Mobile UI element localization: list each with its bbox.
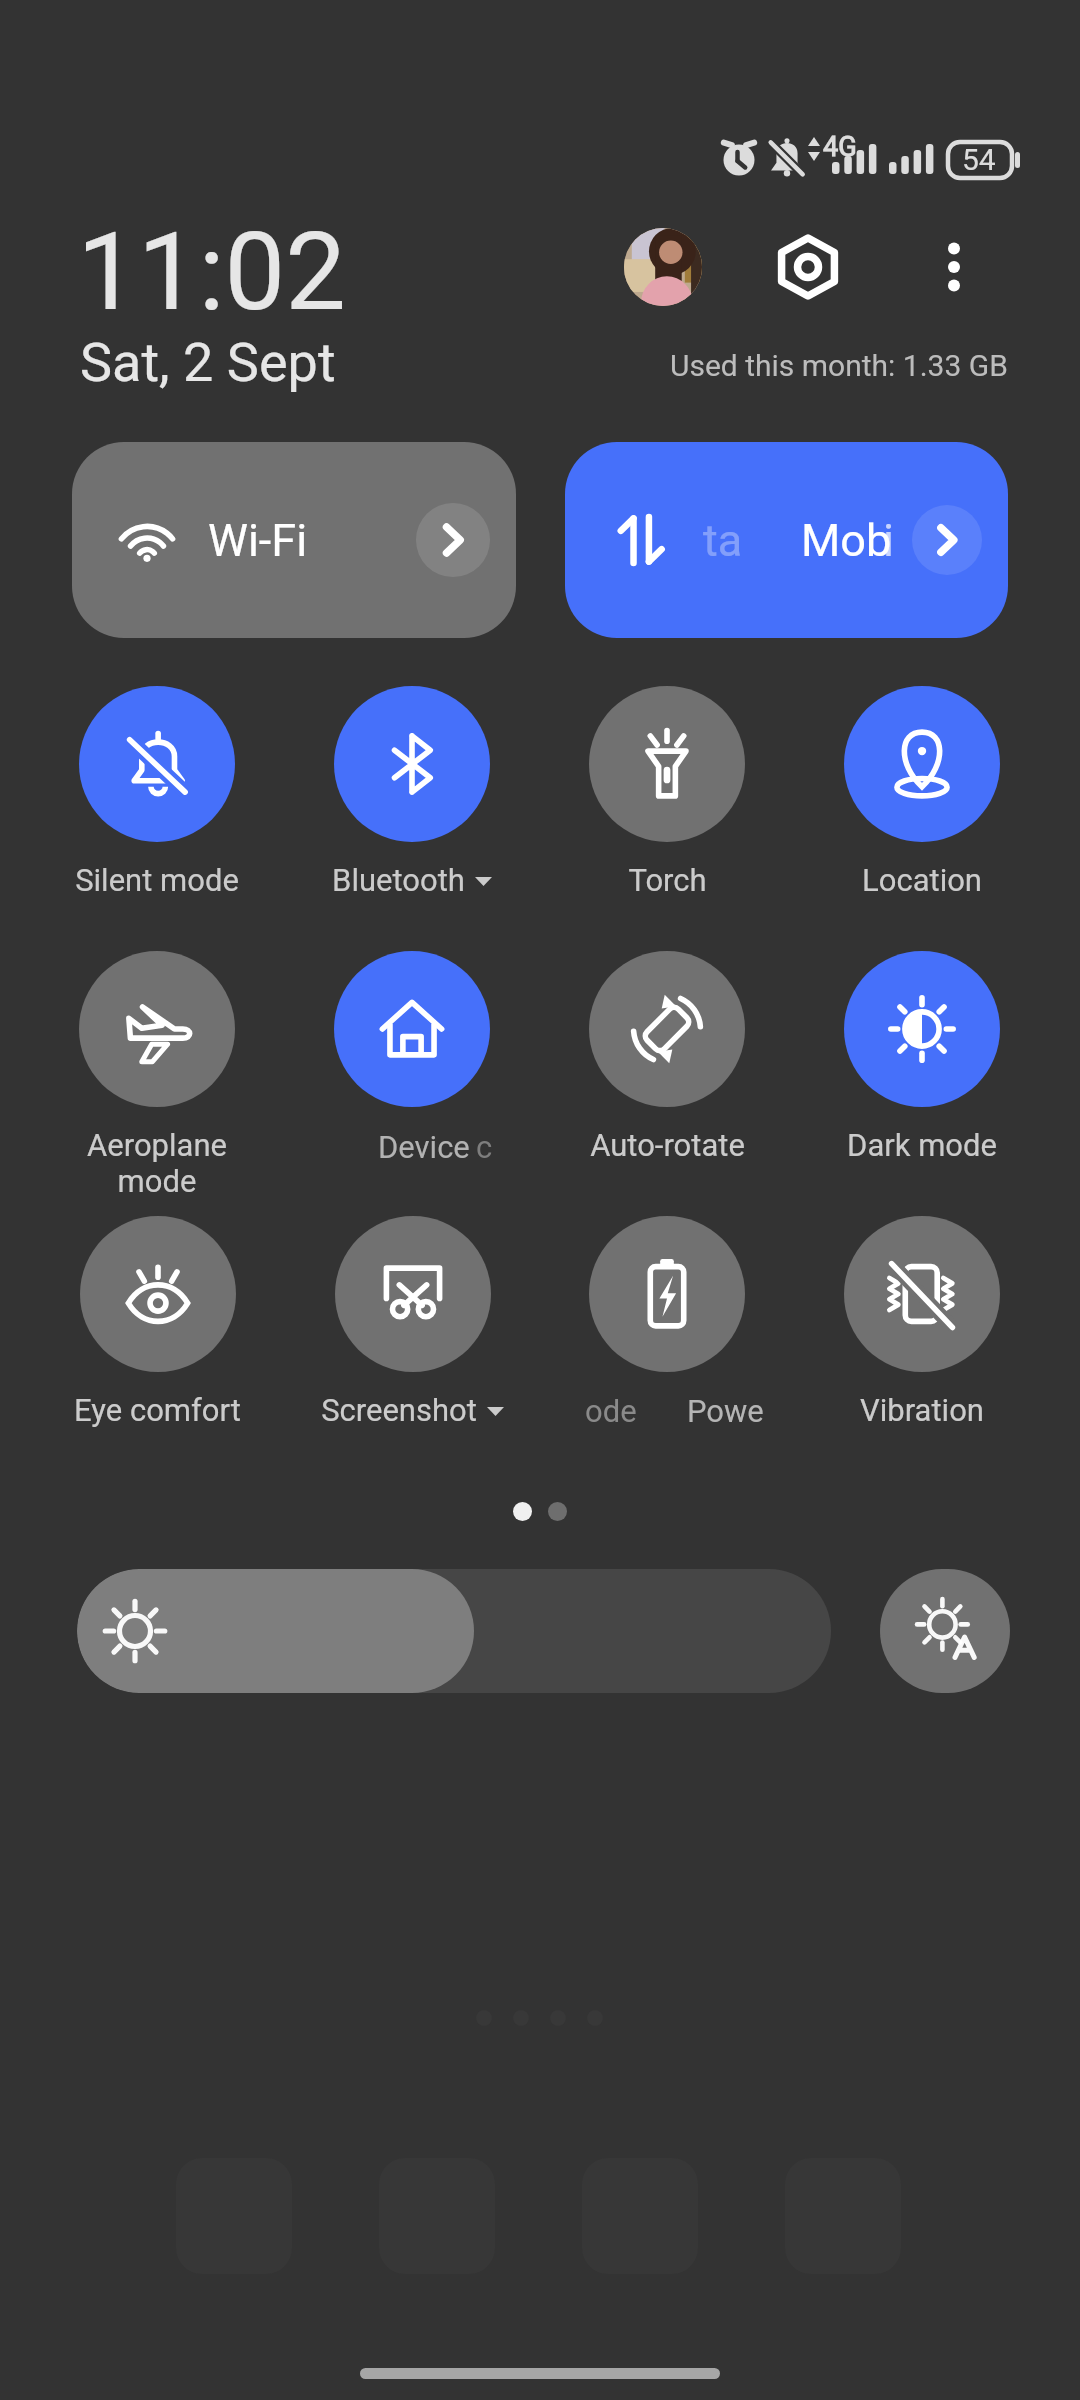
button[interactable]: Auto brightness [880, 1569, 1010, 1693]
button[interactable]: Dark mode [797, 943, 1047, 1198]
staticText: i [883, 514, 894, 567]
staticText: Wi-Fi [208, 514, 308, 567]
staticText: Mob [801, 514, 892, 567]
button[interactable]: Settings [772, 231, 844, 303]
staticText: Device [378, 1129, 470, 1165]
staticText: 11:02 [77, 209, 346, 336]
staticText: Silent mode [75, 862, 239, 898]
button[interactable]: Device controls [287, 943, 537, 1198]
staticText: ode [585, 1393, 637, 1429]
staticText: Location [862, 862, 982, 898]
staticText: c [476, 1129, 493, 1165]
staticText: Aeroplane mode [87, 1127, 227, 1198]
button[interactable]: Silent mode [32, 678, 282, 933]
staticText: Used this month: 1.33 GB [670, 348, 1008, 383]
button[interactable]: Torch [542, 678, 792, 933]
button[interactable]: Location [797, 678, 1047, 933]
button[interactable]: Profile [624, 228, 702, 306]
staticText: Eye comfort [74, 1392, 241, 1428]
staticText: 4G [823, 131, 857, 163]
staticText: ta [703, 514, 743, 567]
button[interactable]: Eye comfort [32, 1208, 282, 1463]
button[interactable]: Brightness [77, 1569, 831, 1693]
staticText: Screenshot [321, 1392, 477, 1428]
button[interactable]: More options [926, 230, 982, 286]
button[interactable]: Vibration [797, 1208, 1047, 1463]
button[interactable]: Power mode [542, 1208, 792, 1463]
staticText: Dark mode [847, 1127, 997, 1163]
staticText: Vibration [860, 1392, 984, 1428]
staticText: Bluetooth [332, 862, 465, 898]
staticText: Powe [687, 1393, 764, 1429]
staticText: Sat, 2 Sept [80, 331, 336, 394]
button[interactable]: Wi-Fi [72, 442, 516, 638]
button[interactable]: Screenshot [287, 1208, 537, 1463]
button[interactable]: ta [565, 442, 1008, 638]
button[interactable]: Auto-rotate [542, 943, 792, 1198]
staticText: 54 [962, 142, 996, 177]
staticText: Auto-rotate [590, 1127, 745, 1163]
button[interactable]: Bluetooth [287, 678, 537, 933]
button[interactable]: Aeroplane mode [32, 943, 282, 1198]
staticText: Torch [628, 862, 707, 898]
